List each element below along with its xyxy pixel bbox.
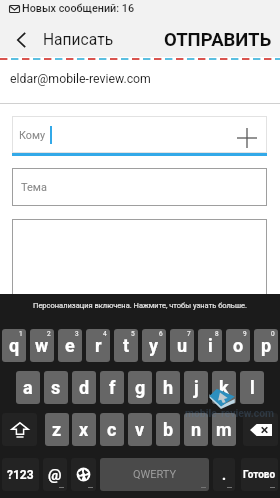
button[interactable]: @ <box>43 458 67 491</box>
staticText: . <box>222 467 227 483</box>
staticText: z <box>52 419 62 440</box>
button[interactable]: o <box>226 329 250 362</box>
staticText: 3 <box>75 330 79 338</box>
staticText: f <box>109 377 116 398</box>
button[interactable]: Тема <box>12 168 267 206</box>
staticText: eldar@mobile-review.com <box>10 72 151 86</box>
button[interactable]: l <box>240 371 264 404</box>
button[interactable]: ОТПРАВИТЬ <box>158 20 278 60</box>
staticText: x <box>79 419 89 440</box>
staticText: 7 <box>187 330 191 338</box>
button[interactable]: a <box>16 371 40 404</box>
button[interactable]: j <box>184 371 208 404</box>
button[interactable]: x <box>72 413 96 446</box>
staticText: Написать <box>43 31 114 49</box>
staticText: 6 <box>159 330 163 338</box>
staticText: Тема <box>21 181 48 194</box>
staticText: Новых сообщений: 16 <box>22 2 135 15</box>
button[interactable]: m <box>212 413 236 446</box>
staticText: p <box>261 335 272 356</box>
button[interactable]: ?123 <box>2 458 39 491</box>
staticText: l <box>250 377 255 398</box>
staticText: i <box>208 335 213 356</box>
staticText: b <box>163 419 174 440</box>
staticText: Готово <box>243 469 276 481</box>
button[interactable]: k <box>212 371 236 404</box>
button[interactable]: u <box>170 329 194 362</box>
staticText: 4 <box>103 330 107 338</box>
staticText: n <box>191 419 202 440</box>
button[interactable]: Кому <box>12 116 267 153</box>
button[interactable]: Backspace <box>243 413 278 446</box>
staticText: t <box>123 335 130 356</box>
button[interactable]: q <box>2 329 26 362</box>
staticText: m <box>216 419 232 440</box>
button[interactable]: f <box>100 371 124 404</box>
button[interactable]: e <box>58 329 82 362</box>
button[interactable]: QWERTY <box>100 458 209 491</box>
button[interactable]: z <box>45 413 69 446</box>
staticText: Кому <box>19 129 46 142</box>
button[interactable]: . <box>213 458 235 491</box>
staticText: 9 <box>243 330 247 338</box>
button[interactable]: Back <box>3 20 39 60</box>
staticText: ?123 <box>7 468 34 482</box>
staticText: 1 <box>19 330 23 338</box>
staticText: mobile-review.com <box>185 407 275 419</box>
staticText: a <box>23 377 33 398</box>
staticText: 2 <box>47 330 51 338</box>
button[interactable]: w <box>30 329 54 362</box>
button[interactable]: n <box>184 413 208 446</box>
button[interactable] <box>12 219 267 309</box>
button[interactable]: v <box>128 413 152 446</box>
staticText: e <box>65 335 75 356</box>
staticText: ОТПРАВИТЬ <box>164 29 272 51</box>
button[interactable]: h <box>156 371 180 404</box>
staticText: QWERTY <box>133 468 177 481</box>
button[interactable]: b <box>156 413 180 446</box>
button[interactable]: t <box>114 329 138 362</box>
button[interactable]: Change language <box>71 458 96 491</box>
staticText: c <box>107 419 117 440</box>
staticText: o <box>233 335 244 356</box>
other: Add recipient <box>237 128 257 148</box>
staticText: r <box>95 335 102 356</box>
staticText: 5 <box>131 330 135 338</box>
button[interactable]: s <box>44 371 68 404</box>
staticText: s <box>51 377 61 398</box>
staticText: v <box>135 419 145 440</box>
staticText: y <box>149 335 159 356</box>
button[interactable]: Shift <box>2 413 37 446</box>
staticText: h <box>163 377 174 398</box>
button[interactable]: c <box>100 413 124 446</box>
staticText: 0 <box>271 330 275 338</box>
button[interactable]: y <box>142 329 166 362</box>
staticText: q <box>9 335 20 356</box>
staticText: j <box>194 377 199 398</box>
button[interactable]: p <box>254 329 278 362</box>
staticText: w <box>35 335 49 356</box>
button[interactable]: g <box>128 371 152 404</box>
button[interactable]: i <box>198 329 222 362</box>
staticText: g <box>135 377 146 398</box>
button[interactable]: Готово <box>241 458 278 491</box>
staticText: d <box>79 377 90 398</box>
button[interactable]: d <box>72 371 96 404</box>
staticText: 8 <box>215 330 219 338</box>
staticText: u <box>177 335 188 356</box>
staticText: k <box>219 377 229 398</box>
staticText: @ <box>48 466 62 484</box>
staticText: Персонализация включена. Нажмите, чтобы … <box>33 301 247 310</box>
button[interactable]: r <box>86 329 110 362</box>
